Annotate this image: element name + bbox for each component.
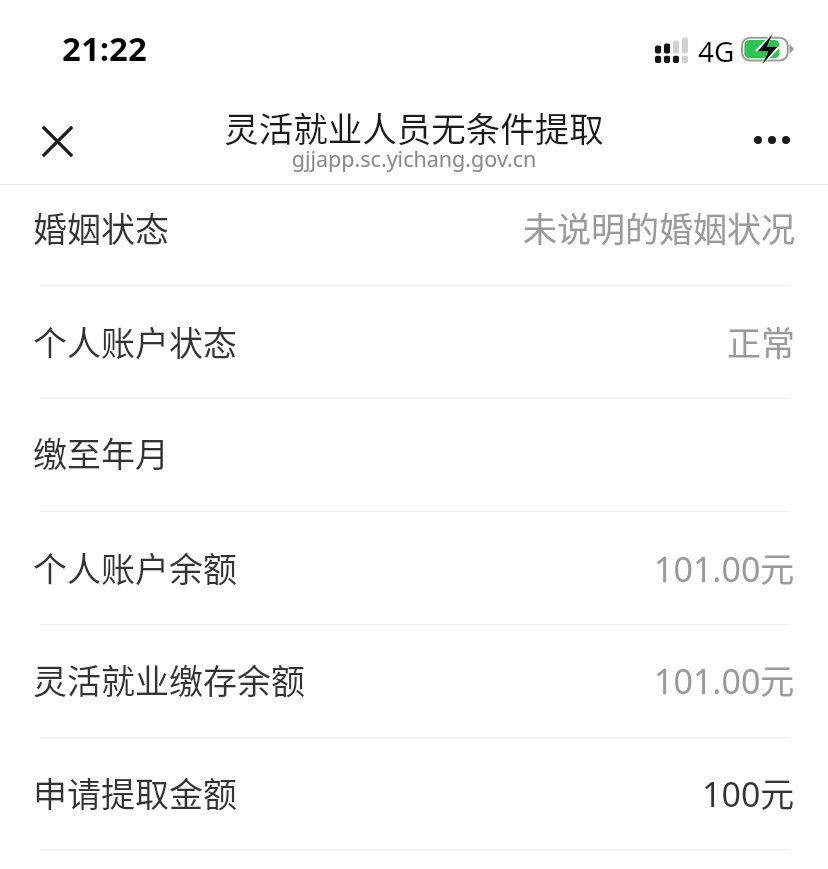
- staticText: 21:22: [62, 26, 147, 71]
- button[interactable]: Close: [0, 95, 112, 184]
- staticText: 缴至年月: [33, 428, 169, 477]
- staticText: 个人账户余额: [33, 543, 237, 592]
- button[interactable]: 婚姻状态: [0, 184, 828, 285]
- button[interactable]: 个人账户余额: [0, 511, 828, 624]
- staticText: 申请提取金额: [33, 768, 237, 817]
- staticText: 4G: [698, 32, 735, 70]
- staticText: 101.00元: [654, 655, 795, 704]
- staticText: 婚姻状态: [33, 203, 169, 252]
- staticText: 未说明的婚姻状况: [523, 203, 795, 252]
- staticText: 灵活就业缴存余额: [33, 655, 305, 704]
- button[interactable]: 个人账户状态: [0, 285, 828, 398]
- button[interactable]: 灵活就业缴存余额: [0, 624, 828, 737]
- staticText: 个人账户状态: [33, 317, 237, 366]
- staticText: 灵活就业人员无条件提取: [0, 102, 828, 152]
- button[interactable]: More options: [716, 95, 828, 184]
- staticText: 100元: [702, 768, 795, 817]
- button[interactable]: 申请提取金额: [0, 737, 828, 849]
- button[interactable]: 缴至年月: [0, 398, 828, 511]
- staticText: 101.00元: [654, 543, 795, 592]
- staticText: gjjapp.sc.yichang.gov.cn: [0, 144, 828, 173]
- staticText: 正常: [727, 317, 795, 366]
